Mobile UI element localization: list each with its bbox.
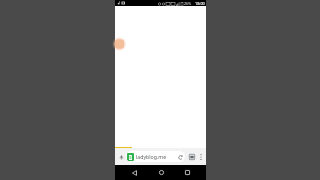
button[interactable]: Recent apps: [179, 165, 195, 180]
button[interactable]: ladyblog.me: [126, 151, 185, 162]
button[interactable]: Back: [126, 165, 142, 180]
button[interactable]: Switch tabs: [187, 152, 196, 161]
button[interactable]: More options: [197, 151, 204, 162]
button[interactable]: Voice search: [117, 153, 125, 161]
staticText: 18:00: [195, 1, 205, 6]
staticText: ladyblog.me: [136, 153, 176, 160]
button[interactable]: Home: [153, 165, 169, 180]
staticText: 26%: [184, 1, 192, 6]
button[interactable]: Reload: [176, 153, 184, 161]
